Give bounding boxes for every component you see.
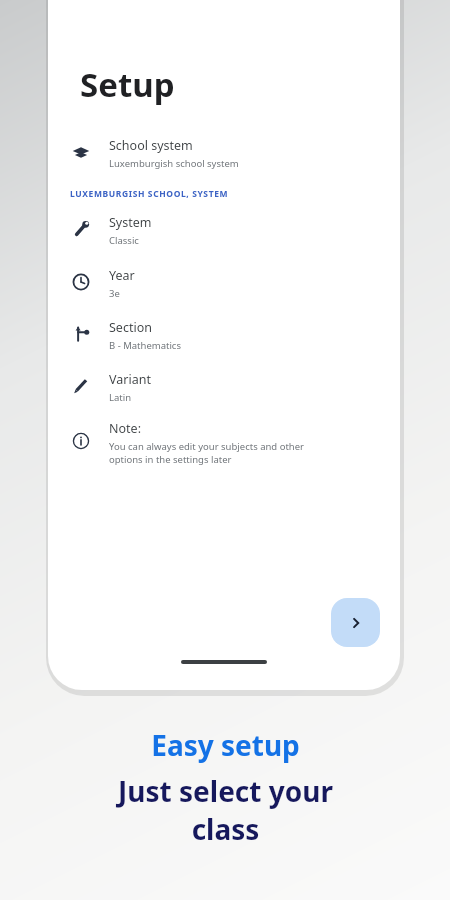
staticText: Year [109, 267, 135, 284]
staticText: Latin [109, 391, 132, 404]
staticText: Easy setup [151, 726, 300, 764]
staticText: Setup [80, 62, 175, 107]
button[interactable]: Year [48, 265, 400, 302]
staticText: School system [109, 137, 193, 154]
staticText: LUXEMBURGISH SCHOOL, SYSTEM [70, 188, 229, 200]
staticText: System [109, 214, 152, 231]
staticText: Section [109, 319, 152, 336]
staticText: B - Mathematics [109, 339, 181, 352]
staticText: You can always edit your subjects and ot… [109, 440, 304, 466]
staticText: 3e [109, 287, 120, 300]
button[interactable]: Section [48, 317, 400, 354]
staticText: Just select your class [118, 772, 333, 848]
staticText: Variant [109, 371, 151, 388]
button[interactable]: School system [48, 135, 400, 172]
staticText: Classic [109, 234, 139, 247]
button[interactable]: Variant [48, 369, 400, 406]
staticText: Note: [109, 420, 141, 437]
staticText: Luxemburgish school system [109, 157, 239, 170]
button[interactable]: Next [331, 598, 380, 647]
button[interactable]: System [48, 212, 400, 249]
